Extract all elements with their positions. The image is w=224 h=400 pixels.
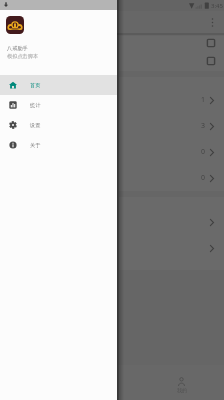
staticText: 0 [201, 147, 206, 157]
button[interactable]: 首页 [0, 75, 117, 95]
button[interactable]: 0 [119, 139, 224, 165]
staticText: 3 [201, 121, 206, 131]
button[interactable]: Checkbox [119, 39, 224, 47]
button[interactable] [119, 209, 224, 235]
staticText: 3:45 [211, 2, 223, 10]
button[interactable]: 关于 [0, 135, 117, 155]
staticText: 首页 [30, 82, 41, 89]
button[interactable]: 统计 [0, 95, 117, 115]
other: Checkbox [207, 39, 215, 47]
staticText: 关于 [30, 142, 41, 149]
staticText: 八戒助手 [7, 45, 28, 52]
button[interactable]: 设置 [0, 115, 117, 135]
other: Checkbox [207, 57, 215, 65]
button[interactable]: 1 [119, 87, 224, 113]
staticText: 设置 [30, 122, 41, 129]
button[interactable]: Checkbox [119, 57, 224, 65]
button[interactable]: More options [206, 16, 219, 29]
staticText: 模拟点击脚本 [7, 53, 39, 60]
staticText: 统计 [30, 102, 41, 109]
button[interactable]: App icon [6, 16, 24, 34]
button[interactable] [119, 235, 224, 261]
staticText: 1 [201, 95, 206, 105]
button[interactable]: 3 [119, 113, 224, 139]
button[interactable]: 我的 [169, 377, 194, 393]
staticText: 我的 [177, 387, 187, 393]
staticText: 0 [201, 173, 206, 183]
button[interactable]: 0 [119, 165, 224, 191]
